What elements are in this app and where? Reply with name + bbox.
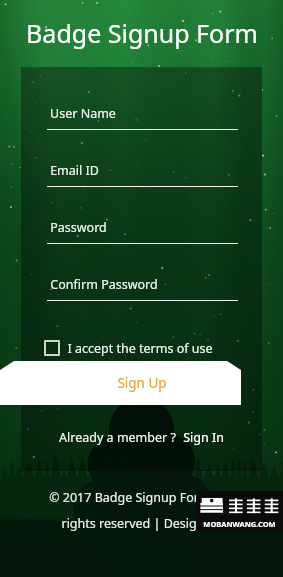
button[interactable]: Email ID	[21, 154, 262, 211]
staticText: Email ID	[50, 162, 99, 179]
staticText: Sign Up	[117, 374, 167, 392]
staticText: Badge Signup Form	[26, 16, 258, 50]
button[interactable]: I accept the terms of use	[45, 335, 213, 361]
staticText: rights reserved | Design by	[61, 515, 222, 532]
staticText: MOBANWANG.COM	[203, 519, 276, 529]
staticText: Already a member ?	[59, 429, 176, 446]
button[interactable]: User Name	[21, 97, 262, 154]
other: mobanwang.com watermark	[196, 491, 283, 532]
staticText: Sign In	[183, 429, 224, 446]
staticText: © 2017 Badge Signup Form . All	[49, 489, 235, 506]
button[interactable]: Password	[21, 211, 262, 268]
staticText: Password	[50, 219, 107, 236]
button[interactable]: Confirm Password	[21, 268, 262, 325]
staticText: I accept the terms of use	[67, 340, 213, 357]
button[interactable]: Already a member ?	[59, 429, 224, 446]
staticText: User Name	[50, 105, 116, 122]
staticText: Confirm Password	[50, 276, 158, 293]
